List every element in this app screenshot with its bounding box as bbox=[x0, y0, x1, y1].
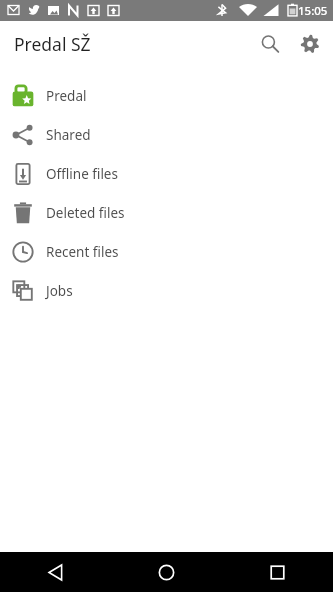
staticText: Predal SŽ bbox=[14, 32, 91, 56]
button[interactable]: Shared bbox=[0, 115, 333, 154]
staticText: 15:05 bbox=[298, 3, 328, 19]
button[interactable]: Offline files bbox=[0, 154, 333, 193]
button[interactable]: Predal bbox=[0, 76, 333, 115]
button[interactable]: Recent files bbox=[0, 232, 333, 271]
button[interactable]: Settings bbox=[290, 24, 330, 64]
staticText: Offline files bbox=[46, 165, 118, 183]
staticText: Shared bbox=[46, 126, 91, 144]
staticText: Recent files bbox=[46, 243, 119, 261]
staticText: Deleted files bbox=[46, 204, 125, 222]
staticText: Jobs bbox=[46, 282, 73, 300]
button[interactable]: Back bbox=[0, 552, 111, 592]
staticText: Predal bbox=[46, 87, 87, 105]
button[interactable]: Recents bbox=[222, 552, 333, 592]
button[interactable]: Jobs bbox=[0, 271, 333, 310]
button[interactable]: Search bbox=[250, 24, 290, 64]
button[interactable]: Deleted files bbox=[0, 193, 333, 232]
button[interactable]: Home bbox=[111, 552, 222, 592]
